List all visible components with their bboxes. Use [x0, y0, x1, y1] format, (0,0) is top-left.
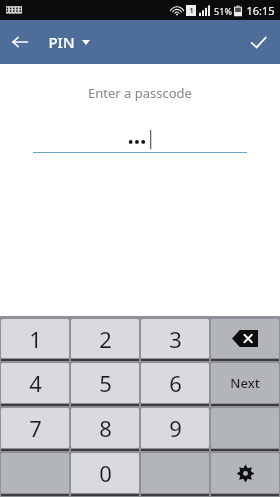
button[interactable]: Back	[0, 22, 40, 62]
staticText: 8	[99, 413, 112, 443]
staticText: Enter a passcode	[88, 84, 192, 102]
button[interactable]: Key 9	[141, 408, 209, 448]
button[interactable]: Confirm	[236, 20, 280, 64]
staticText: PIN	[48, 32, 75, 52]
staticText: 16:15	[246, 3, 275, 18]
button[interactable]: Key 0	[71, 453, 139, 493]
staticText: 1	[189, 6, 194, 16]
staticText: 1	[29, 324, 42, 354]
staticText: 9	[169, 413, 182, 443]
button[interactable]	[33, 126, 247, 152]
button[interactable]: Key 2	[71, 319, 139, 358]
button[interactable]: Key 1	[1, 319, 69, 358]
button[interactable]: Key 3	[141, 319, 209, 358]
staticText: 2	[99, 324, 112, 354]
button[interactable]: Key 4	[1, 363, 69, 403]
staticText: 51%	[214, 5, 232, 17]
button[interactable]: Key 5	[71, 363, 139, 403]
staticText: 0	[99, 458, 112, 488]
staticText: Next	[230, 374, 260, 392]
button[interactable]: Key 8	[71, 408, 139, 448]
staticText: 3	[169, 324, 182, 354]
button[interactable]: Key 6	[141, 363, 209, 403]
button[interactable]: PIN	[48, 32, 90, 52]
button[interactable]: Backspace	[211, 319, 279, 358]
staticText: 5	[99, 368, 112, 398]
staticText: 4	[29, 368, 42, 398]
button[interactable]: Key 7	[1, 408, 69, 448]
button[interactable]: Settings	[211, 453, 279, 493]
button[interactable]: Next	[211, 363, 279, 403]
staticText: 7	[29, 413, 42, 443]
staticText: 6	[169, 368, 182, 398]
